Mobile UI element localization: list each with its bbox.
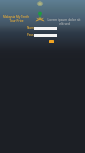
- button[interactable]: Login: [49, 40, 54, 43]
- staticText: elit sed: [59, 22, 70, 26]
- staticText: Name: [27, 26, 34, 30]
- staticText: Lorem ipsum dolor sit amet cons ad: [45, 18, 83, 22]
- staticText: Malaysia My Tenth Me Tour At Board Grp: [1, 15, 31, 19]
- staticText: Tour Price: [9, 19, 24, 23]
- staticText: Pass: [27, 33, 34, 37]
